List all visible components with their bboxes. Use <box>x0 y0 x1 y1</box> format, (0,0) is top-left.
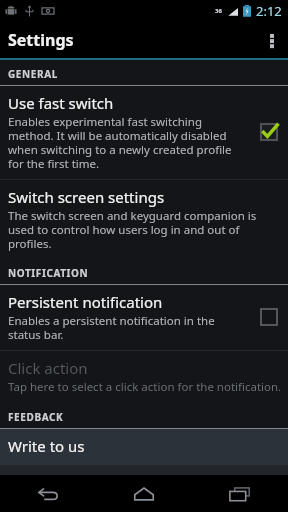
staticText: The switch screen and keyguard companion… <box>8 208 282 251</box>
button[interactable]: Click action <box>0 351 288 403</box>
button[interactable]: Persistent notification <box>0 285 288 350</box>
staticText: Switch screen settings <box>8 187 165 207</box>
button[interactable]: Unchecked <box>256 304 282 330</box>
staticText: Write to us <box>8 436 85 456</box>
staticText: GENERAL <box>8 67 58 81</box>
button[interactable]: Switch screen settings <box>0 180 288 259</box>
staticText: Enables a persistent notification in the… <box>8 313 248 342</box>
button[interactable]: Use fast switch <box>0 86 288 179</box>
staticText: Use fast switch <box>8 93 114 113</box>
staticText: 2:12 <box>256 2 282 20</box>
staticText: 36 <box>215 7 222 15</box>
button[interactable]: Write to us <box>0 429 288 465</box>
button[interactable]: More options <box>256 22 288 58</box>
staticText: Tap here to select a click action for th… <box>8 379 282 395</box>
button[interactable]: Checked <box>256 119 282 145</box>
staticText: Settings <box>8 29 74 51</box>
staticText: NOTIFICATION <box>8 266 89 280</box>
button[interactable]: Back <box>0 475 96 512</box>
staticText: Persistent notification <box>8 292 163 312</box>
staticText: Enables experimental fast switching meth… <box>8 114 248 171</box>
button[interactable]: Recents <box>192 475 288 512</box>
staticText: Click action <box>8 358 88 378</box>
staticText: FEEDBACK <box>8 410 64 424</box>
button[interactable]: Home <box>96 475 192 512</box>
